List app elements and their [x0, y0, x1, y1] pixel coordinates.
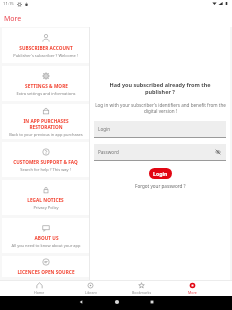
- staticText: Privacy Policy: [33, 205, 59, 210]
- staticText: Publisher's subscriber ? Welcome !: [13, 53, 78, 58]
- button[interactable]: Password: [94, 144, 226, 160]
- other: Home: [114, 299, 120, 305]
- button[interactable]: ABOUT US: [2, 218, 89, 253]
- staticText: Extra settings and informations: [16, 91, 76, 96]
- button[interactable]: Home: [13, 280, 65, 296]
- other: Recents: [149, 299, 155, 305]
- button[interactable]: CUSTOMER SUPPORT & FAQ: [2, 142, 89, 177]
- staticText: LICENCES OPEN SOURCE: [17, 269, 75, 275]
- button[interactable]: LEGAL NOTICES: [2, 180, 89, 215]
- button[interactable]: IN APP PURCHASES RESTORATION: [2, 104, 89, 139]
- staticText: 11:15: [3, 1, 14, 7]
- button[interactable]: Login: [149, 168, 172, 179]
- staticText: SUBSCRIBER ACCOUNT: [19, 45, 73, 51]
- staticText: Password: [98, 149, 119, 155]
- staticText: All you need to know about your app: [11, 243, 81, 248]
- button[interactable]: Login: [94, 121, 226, 137]
- staticText: CUSTOMER SUPPORT & FAQ: [13, 159, 78, 165]
- staticText: LEGAL NOTICES: [27, 197, 64, 203]
- staticText: More: [188, 290, 197, 294]
- button[interactable]: SETTINGS & MORE: [2, 66, 89, 101]
- other: Back: [78, 299, 84, 305]
- button[interactable]: Forgot your password ?: [135, 183, 186, 189]
- staticText: ABOUT US: [34, 235, 59, 241]
- button[interactable]: Library: [65, 280, 116, 296]
- staticText: Home: [34, 290, 45, 294]
- button[interactable]: SUBSCRIBER ACCOUNT: [2, 28, 89, 63]
- other: Show password: [215, 149, 221, 155]
- staticText: Log in with your subscriber's identifier…: [95, 102, 226, 115]
- staticText: SETTINGS & MORE: [25, 83, 68, 89]
- staticText: Login: [153, 170, 168, 177]
- staticText: Search for help ? This way !: [20, 167, 71, 172]
- staticText: Had you subscribed already from the publ…: [109, 81, 211, 95]
- staticText: Bookmarks: [132, 290, 152, 294]
- button[interactable]: More: [167, 280, 218, 296]
- button[interactable]: LICENCES OPEN SOURCE: [2, 256, 89, 277]
- staticText: Back to your previous in app purchases: [9, 132, 83, 137]
- staticText: Library: [85, 290, 97, 294]
- staticText: More: [4, 14, 22, 24]
- button[interactable]: Bookmarks: [116, 280, 167, 296]
- staticText: IN APP PURCHASES RESTORATION: [23, 118, 69, 130]
- staticText: Login: [98, 126, 111, 132]
